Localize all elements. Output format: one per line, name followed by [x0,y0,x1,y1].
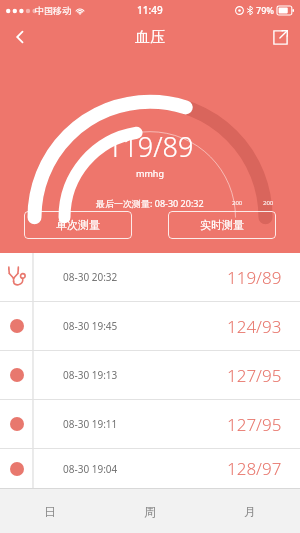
staticText: 08-30 20:32 [63,270,118,284]
staticText: 79% [256,4,274,16]
staticText: 08-30 19:13 [63,368,118,382]
staticText: 119/89 [107,128,194,165]
staticText: 119/89 [227,266,282,289]
staticText: 实时测量 [200,218,244,232]
staticText: 中国移动 [35,5,71,16]
staticText: 最后一次测量: 08-30 20:32 [96,197,204,209]
button[interactable]: Share [260,20,300,54]
button[interactable]: 月 [200,489,300,533]
staticText: 200 [263,199,274,207]
staticText: 127/95 [227,364,282,387]
staticText: 200 [232,199,243,207]
staticText: 08-30 19:04 [63,462,118,476]
button[interactable]: 08-30 19:45 [0,302,300,350]
staticText: mmhg [136,167,164,179]
button[interactable]: Back [0,20,40,54]
staticText: 128/97 [227,457,282,480]
staticText: 08-30 19:11 [63,417,118,431]
button[interactable]: 08-30 19:13 [0,351,300,399]
staticText: 周 [144,504,156,519]
staticText: 08-30 19:45 [63,319,118,333]
staticText: 11:49 [137,3,163,17]
button[interactable]: 08-30 20:32 [0,253,300,301]
button[interactable]: 周 [100,489,200,533]
button[interactable]: 日 [0,489,100,533]
button[interactable]: 实时测量 [168,211,276,239]
button[interactable]: 单次测量 [24,211,132,239]
button[interactable]: 08-30 19:04 [0,449,300,488]
staticText: 124/93 [227,315,282,338]
staticText: 月 [244,504,256,519]
staticText: 日 [44,504,56,519]
staticText: 127/95 [227,413,282,436]
staticText: 血压 [135,28,165,47]
staticText: 单次测量 [56,218,100,232]
button[interactable]: 08-30 19:11 [0,400,300,448]
